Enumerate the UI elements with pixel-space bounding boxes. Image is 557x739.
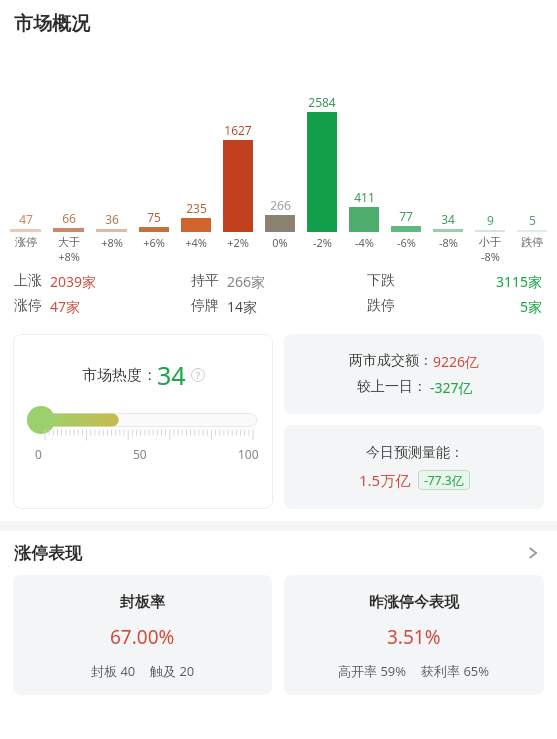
staticText: 封板率: [120, 593, 165, 612]
staticText: 涨停: [14, 297, 42, 315]
staticText: 100: [238, 446, 259, 462]
staticText: 5: [529, 212, 536, 228]
staticText: 涨停表现: [14, 543, 82, 564]
staticText: 下跌: [367, 272, 395, 290]
staticText: 小于: [479, 235, 501, 249]
staticText: 66: [62, 210, 76, 226]
staticText: 5家: [520, 297, 543, 316]
button[interactable]: 涨停表现: [0, 531, 557, 575]
staticText: 昨涨停今表现: [369, 593, 459, 612]
staticText: 停牌: [191, 297, 219, 315]
staticText: 2584: [308, 94, 336, 110]
staticText: +4%: [185, 235, 207, 250]
staticText: 235: [186, 200, 207, 216]
staticText: 75: [147, 209, 161, 225]
button[interactable]: 市场热度：: [13, 334, 273, 509]
staticText: -6%: [397, 235, 416, 250]
staticText: 今日预测量能：: [366, 444, 464, 462]
staticText: 1627: [224, 122, 252, 138]
staticText: 47家: [50, 297, 81, 316]
staticText: +2%: [227, 235, 249, 250]
button[interactable]: 封板率: [13, 575, 272, 695]
staticText: 封板 40: [91, 662, 136, 680]
staticText: 3115家: [496, 272, 543, 291]
staticText: 获利率 65%: [421, 662, 490, 680]
staticText: 较上一日：: [357, 378, 427, 396]
staticText: 9: [487, 212, 494, 228]
staticText: 411: [354, 189, 375, 205]
other: 更多: [523, 543, 543, 563]
staticText: 市场概况: [14, 12, 90, 36]
button[interactable]: 今日预测量能：: [284, 425, 544, 509]
staticText: 大于: [58, 235, 80, 249]
staticText: 跌停: [521, 235, 543, 249]
staticText: 266: [270, 197, 291, 213]
staticText: 34: [441, 211, 455, 227]
staticText: 1.5万亿: [359, 470, 411, 490]
button[interactable]: 两市成交额：: [284, 334, 544, 414]
button[interactable]: 帮助: [191, 368, 205, 382]
staticText: 14家: [227, 297, 258, 316]
staticText: -327亿: [430, 378, 473, 397]
staticText: 47: [19, 211, 33, 227]
staticText: -4%: [355, 235, 374, 250]
staticText: 触及 20: [150, 662, 195, 680]
button[interactable]: 昨涨停今表现: [284, 575, 544, 695]
staticText: -8%: [439, 235, 458, 250]
staticText: -2%: [313, 235, 332, 250]
staticText: 上涨: [14, 272, 42, 290]
staticText: 持平: [191, 272, 219, 290]
staticText: 0: [35, 446, 42, 462]
staticText: 高开率 59%: [338, 662, 407, 680]
staticText: +8%: [101, 235, 123, 250]
staticText: 67.00%: [110, 624, 175, 650]
staticText: 9226亿: [433, 352, 480, 371]
staticText: +6%: [143, 235, 165, 250]
staticText: 266家: [227, 272, 266, 291]
staticText: 50: [133, 446, 147, 462]
staticText: -8%: [481, 249, 500, 264]
staticText: +8%: [58, 249, 80, 264]
staticText: 2039家: [50, 272, 97, 291]
staticText: 0%: [272, 235, 288, 250]
staticText: ?: [196, 369, 200, 381]
staticText: -77.3亿: [424, 472, 464, 488]
staticText: 涨停: [15, 235, 37, 249]
staticText: 77: [399, 208, 413, 224]
staticText: 3.51%: [387, 624, 441, 650]
staticText: 两市成交额：: [349, 352, 433, 370]
staticText: 跌停: [367, 297, 395, 315]
staticText: 市场热度：: [82, 366, 157, 385]
staticText: 36: [105, 211, 119, 227]
staticText: 34: [157, 358, 186, 392]
